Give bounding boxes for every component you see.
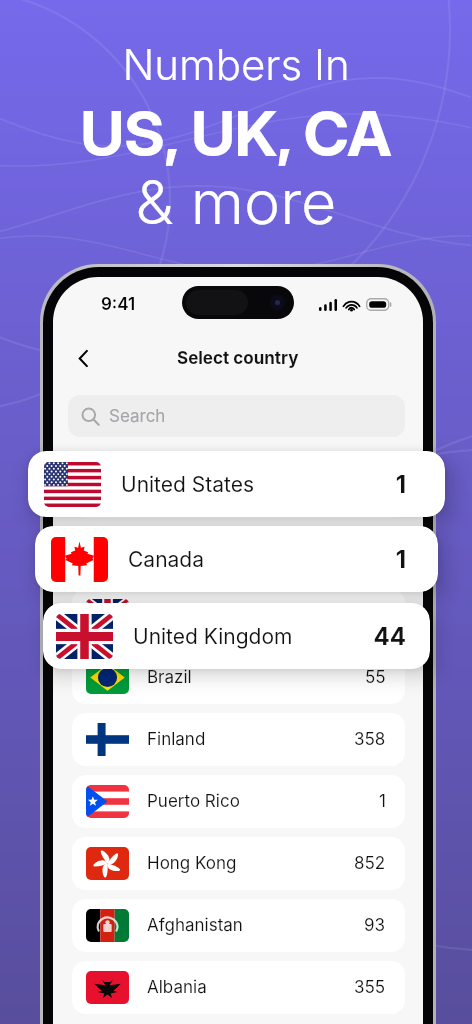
staticText: 358: [354, 729, 386, 750]
staticText: United States: [147, 481, 255, 502]
button[interactable]: Canada: [35, 526, 438, 592]
button[interactable]: Canada: [72, 527, 405, 580]
staticText: Puerto Rico: [147, 791, 240, 812]
staticText: 1: [379, 791, 386, 812]
staticText: Finland: [147, 729, 206, 750]
button[interactable]: Back: [65, 343, 101, 373]
staticText: Albania: [147, 977, 207, 998]
staticText: 55: [365, 667, 386, 688]
staticText: 1: [35, 545, 406, 574]
button[interactable]: Search: [68, 395, 405, 437]
staticText: Search: [109, 406, 166, 427]
staticText: 9:41: [101, 294, 136, 314]
staticText: 44: [43, 622, 406, 651]
button[interactable]: Afghanistan: [72, 899, 405, 952]
button[interactable]: United States: [72, 465, 405, 518]
staticText: US, UK, CA: [0, 96, 472, 171]
button[interactable]: Albania: [72, 961, 405, 1014]
staticText: 1: [28, 470, 406, 499]
button[interactable]: United Kingdom: [72, 589, 405, 642]
button[interactable]: Brazil: [72, 651, 405, 704]
staticText: Hong Kong: [147, 853, 237, 874]
staticText: Select country: [177, 348, 299, 369]
button[interactable]: Puerto Rico: [72, 775, 405, 828]
button[interactable]: United Kingdom: [43, 603, 430, 669]
staticText: United Kingdom: [133, 624, 293, 649]
staticText: Numbers In: [0, 39, 472, 90]
staticText: 93: [364, 915, 386, 936]
button[interactable]: United States: [28, 451, 445, 517]
staticText: Canada: [128, 547, 204, 572]
staticText: 852: [354, 853, 386, 874]
button[interactable]: Hong Kong: [72, 837, 405, 890]
staticText: Brazil: [147, 667, 192, 688]
staticText: Afghanistan: [147, 915, 243, 936]
staticText: Canada: [147, 543, 209, 564]
staticText: United States: [121, 472, 255, 497]
button[interactable]: Finland: [72, 713, 405, 766]
staticText: & more: [0, 165, 472, 239]
staticText: 355: [354, 977, 386, 998]
